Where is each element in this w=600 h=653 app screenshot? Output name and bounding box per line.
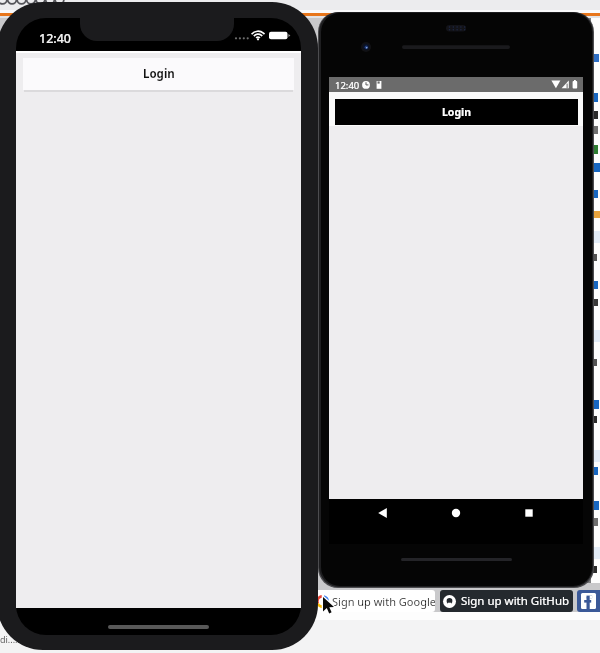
staticText: di....mp [0, 633, 32, 645]
staticText: Sign up with Google [332, 594, 435, 609]
button[interactable]: Sign up with Google [300, 590, 435, 612]
button[interactable]: Login [335, 99, 578, 125]
staticText: 12:40 [335, 79, 360, 92]
button[interactable]: Recents [500, 499, 558, 527]
staticText: Login [442, 105, 472, 119]
button[interactable]: Sign up with Facebook [577, 590, 600, 612]
staticText: Login [143, 66, 175, 82]
button[interactable]: Back [354, 499, 412, 527]
button[interactable]: Home [427, 499, 485, 527]
button[interactable]: Login [23, 58, 294, 90]
button[interactable]: Sign up with GitHub [440, 590, 573, 612]
staticText: Sign up with GitHub [461, 593, 570, 609]
staticText: 12:40 [39, 30, 72, 47]
